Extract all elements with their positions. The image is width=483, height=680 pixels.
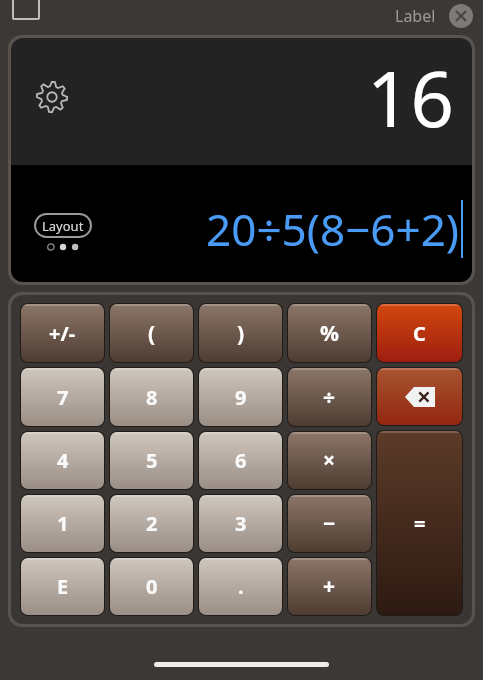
staticText: ) bbox=[237, 319, 245, 348]
staticText: C bbox=[413, 320, 426, 347]
button[interactable]: 9 bbox=[199, 368, 282, 426]
button[interactable]: C bbox=[377, 304, 462, 362]
button[interactable]: 3 bbox=[199, 495, 282, 552]
button[interactable]: × bbox=[288, 432, 371, 489]
staticText: 20÷5(8−6+2) bbox=[206, 199, 459, 259]
staticText: . bbox=[238, 573, 244, 600]
button[interactable]: Close bbox=[449, 4, 473, 28]
staticText: 16 bbox=[367, 46, 454, 150]
staticText: ÷ bbox=[323, 383, 336, 412]
staticText: 3 bbox=[235, 510, 247, 537]
button[interactable]: 4 bbox=[21, 432, 104, 489]
staticText: 4 bbox=[57, 447, 69, 474]
staticText: 8 bbox=[146, 384, 158, 411]
button[interactable]: Layout bbox=[34, 213, 92, 238]
button[interactable]: Settings bbox=[33, 78, 71, 116]
button[interactable]: 6 bbox=[199, 432, 282, 489]
button[interactable]: Backspace bbox=[377, 368, 462, 425]
button[interactable]: E bbox=[21, 558, 104, 615]
staticText: 2 bbox=[146, 510, 158, 537]
button[interactable]: + bbox=[288, 558, 371, 615]
button[interactable]: ) bbox=[199, 304, 282, 362]
staticText: 5 bbox=[146, 447, 158, 474]
button[interactable]: 8 bbox=[110, 368, 193, 426]
button[interactable]: 5 bbox=[110, 432, 193, 489]
button[interactable]: ÷ bbox=[288, 368, 371, 426]
button[interactable]: 2 bbox=[110, 495, 193, 552]
button[interactable]: . bbox=[199, 558, 282, 615]
button[interactable]: 7 bbox=[21, 368, 104, 426]
button[interactable]: = bbox=[377, 431, 462, 615]
staticText: + bbox=[323, 572, 336, 601]
staticText: E bbox=[57, 573, 69, 600]
button[interactable]: +/- bbox=[21, 304, 104, 362]
staticText: − bbox=[323, 509, 336, 538]
staticText: 9 bbox=[235, 384, 247, 411]
staticText: 1 bbox=[57, 510, 69, 537]
button[interactable]: 1 bbox=[21, 495, 104, 552]
staticText: 6 bbox=[235, 447, 247, 474]
staticText: ( bbox=[148, 319, 156, 348]
button[interactable]: ( bbox=[110, 304, 193, 362]
staticText: 7 bbox=[57, 384, 69, 411]
button[interactable]: − bbox=[288, 495, 371, 552]
staticText: = bbox=[414, 510, 426, 537]
staticText: Layout bbox=[42, 217, 84, 235]
staticText: × bbox=[323, 446, 336, 475]
button[interactable]: % bbox=[288, 304, 371, 362]
button[interactable]: 0 bbox=[110, 558, 193, 615]
button[interactable]: Picture in picture bbox=[12, 0, 40, 20]
staticText: +/- bbox=[49, 320, 76, 347]
staticText: 0 bbox=[146, 573, 158, 600]
staticText: Label bbox=[395, 5, 436, 27]
staticText: % bbox=[320, 319, 339, 348]
